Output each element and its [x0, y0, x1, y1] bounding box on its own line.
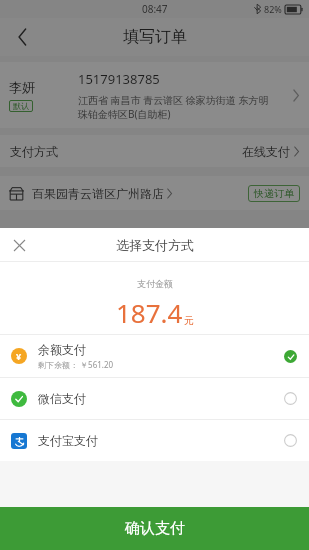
staticText: ¥ — [16, 350, 22, 362]
staticText: 187.4 — [116, 295, 183, 330]
button[interactable]: 微信支付 — [0, 378, 309, 419]
staticText: 填写订单 — [123, 27, 187, 47]
staticText: 确认支付 — [125, 519, 185, 538]
staticText: 余额支付 — [38, 342, 86, 357]
button[interactable]: 百果园青云谱区广州路店 — [0, 176, 309, 210]
button[interactable]: 确认支付 — [0, 507, 309, 550]
staticText: 08:47 — [142, 2, 168, 16]
staticText: 支付金额 — [137, 278, 173, 289]
staticText: 选择支付方式 — [116, 237, 194, 253]
staticText: 默认 — [13, 101, 29, 111]
staticText: 支付方式 — [10, 144, 58, 159]
staticText: 微信支付 — [38, 391, 86, 406]
button[interactable]: Back — [4, 19, 40, 55]
staticText: 百果园青云谱区广州路店 — [32, 186, 164, 201]
button[interactable]: ¥ — [0, 335, 309, 377]
button[interactable] — [0, 0, 309, 228]
button[interactable]: 支付方式 — [0, 135, 309, 167]
staticText: 支付宝支付 — [38, 433, 98, 448]
staticText: 快递订单 — [254, 187, 294, 200]
staticText: 在线支付 — [242, 144, 290, 159]
staticText: 82% — [264, 3, 282, 15]
staticText: 15179138785 — [78, 70, 160, 88]
staticText: 江西省 南昌市 青云谱区 徐家坊街道 东方明珠铂金特区B(自助柜) — [78, 93, 275, 121]
button[interactable]: 支付宝支付 — [0, 420, 309, 461]
button[interactable]: 李妍 — [0, 62, 309, 128]
staticText: 剩下余额： ￥561.20 — [38, 359, 114, 370]
staticText: 李妍 — [9, 79, 35, 95]
button[interactable]: Close — [4, 230, 34, 260]
staticText: 元 — [184, 314, 194, 327]
